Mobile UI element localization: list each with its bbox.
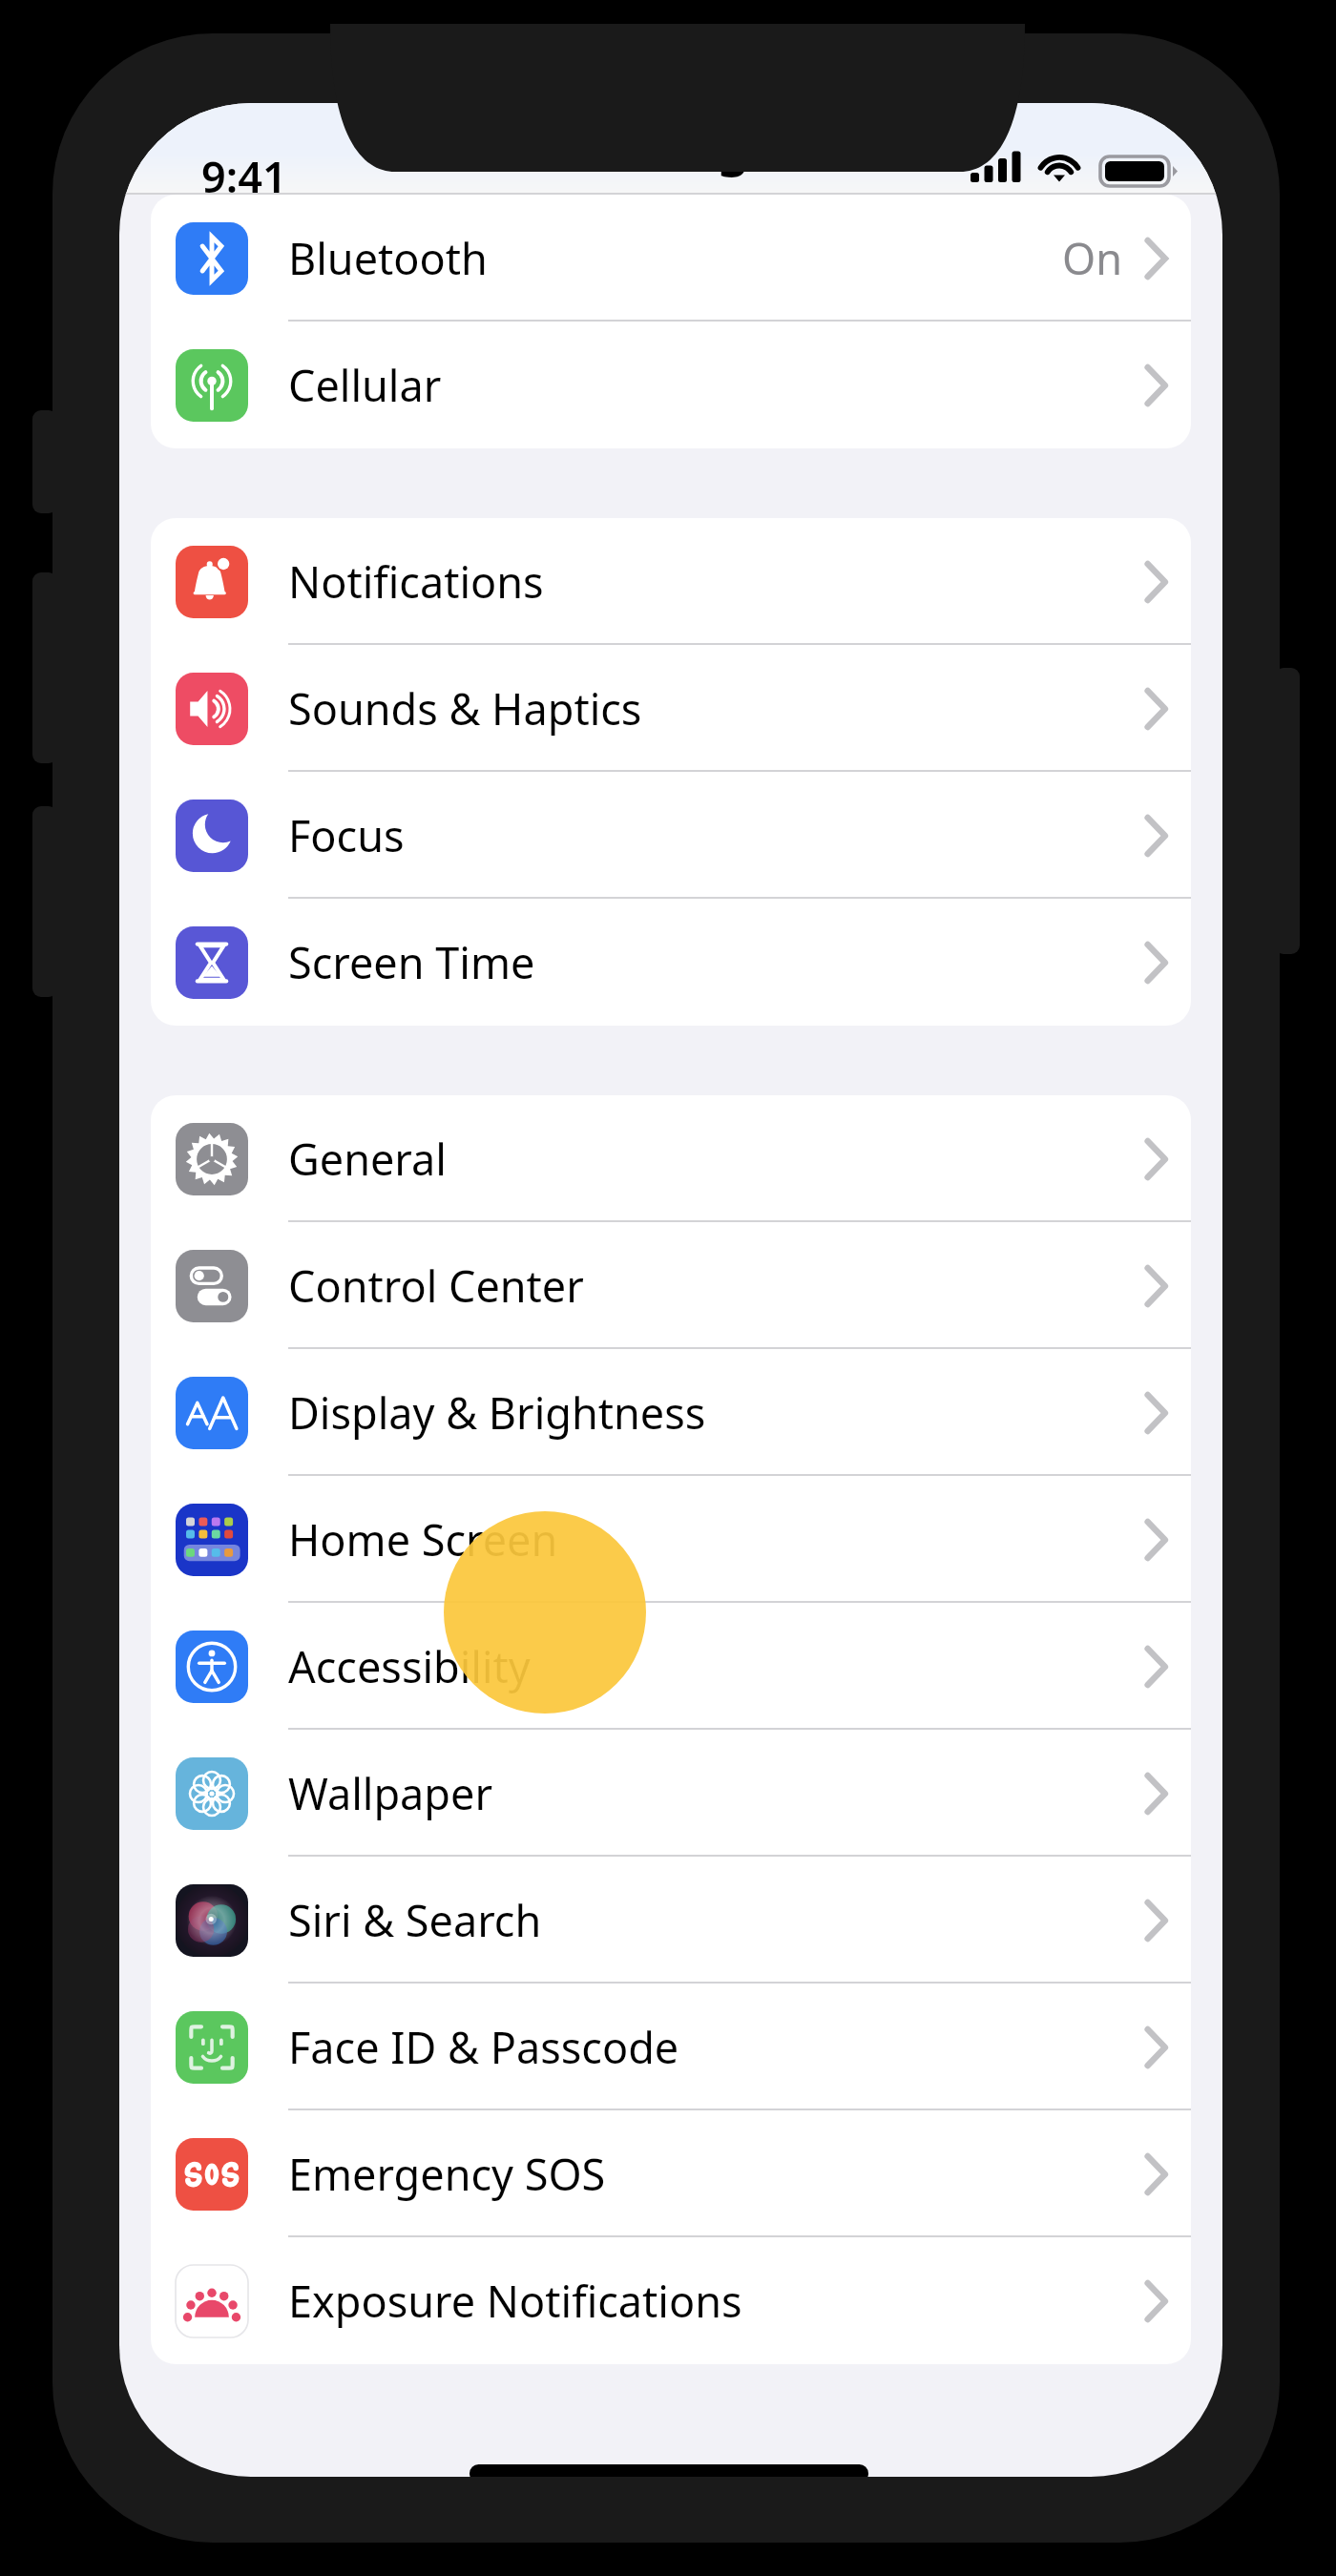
button[interactable]: Cellular xyxy=(151,322,1191,448)
staticText: Siri & Search xyxy=(288,1891,542,1949)
staticText: Focus xyxy=(288,806,405,864)
button[interactable]: Wallpaper xyxy=(151,1730,1191,1857)
staticText: Wallpaper xyxy=(288,1764,492,1822)
button[interactable]: Siri & Search xyxy=(151,1857,1191,1984)
staticText: Home Screen xyxy=(288,1510,558,1568)
staticText: General xyxy=(288,1130,447,1188)
staticText: Accessibility xyxy=(288,1637,531,1695)
button[interactable]: Bluetooth xyxy=(151,195,1191,322)
staticText: Face ID & Passcode xyxy=(288,2018,679,2076)
button[interactable]: Exposure Notifications xyxy=(151,2237,1191,2364)
staticText: Emergency SOS xyxy=(288,2145,606,2203)
button[interactable]: Sounds & Haptics xyxy=(151,645,1191,772)
button[interactable]: Emergency SOS xyxy=(151,2110,1191,2237)
staticText: Bluetooth xyxy=(288,229,488,287)
staticText: Settings xyxy=(567,111,775,179)
staticText: On xyxy=(1062,229,1122,287)
button[interactable]: Face ID & Passcode xyxy=(151,1984,1191,2110)
button[interactable]: Home Screen xyxy=(151,1476,1191,1603)
button[interactable]: Display & Brightness xyxy=(151,1349,1191,1476)
staticText: Screen Time xyxy=(288,933,535,991)
button[interactable]: General xyxy=(151,1095,1191,1222)
staticText: Cellular xyxy=(288,356,442,414)
staticText: Control Center xyxy=(288,1257,584,1315)
staticText: 9:41 xyxy=(201,147,287,195)
button[interactable]: Screen Time xyxy=(151,899,1191,1026)
button[interactable]: Accessibility xyxy=(151,1603,1191,1730)
button[interactable]: Focus xyxy=(151,772,1191,899)
staticText: Exposure Notifications xyxy=(288,2272,742,2330)
button[interactable]: Notifications xyxy=(151,518,1191,645)
staticText: Display & Brightness xyxy=(288,1383,706,1442)
button[interactable]: Control Center xyxy=(151,1222,1191,1349)
staticText: Sounds & Haptics xyxy=(288,679,642,737)
staticText: Notifications xyxy=(288,552,544,611)
